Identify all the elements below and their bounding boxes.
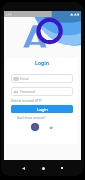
button[interactable]: Password [11, 87, 73, 96]
button[interactable]: Sign in with Twitter [47, 124, 54, 131]
button[interactable]: Recent apps [58, 164, 66, 172]
staticText: Don't have account? [17, 116, 46, 120]
button[interactable]: Email [11, 74, 73, 83]
button[interactable]: Back [19, 164, 27, 172]
staticText: Did not received OTP? [11, 99, 42, 103]
button[interactable]: Sign in with Google [31, 123, 39, 131]
button[interactable]: Home [39, 164, 47, 172]
staticText: Login [37, 107, 48, 112]
staticText: Email [20, 76, 29, 81]
button[interactable]: Login [11, 105, 73, 113]
staticText: Login [11, 60, 73, 67]
staticText: Password [20, 89, 36, 94]
